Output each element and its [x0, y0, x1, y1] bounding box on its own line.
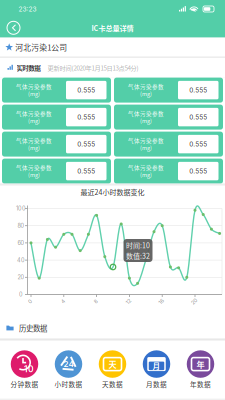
staticText: (mg) [28, 144, 40, 152]
button[interactable]: 月 [134, 347, 178, 392]
staticText: 分钟数据 [10, 379, 38, 389]
staticText: (mg) [140, 171, 152, 179]
button[interactable]: 天 [90, 347, 134, 392]
staticText: 气体污染参数 [16, 164, 52, 172]
staticText: 0 [19, 291, 23, 298]
staticText: 0.555 [77, 167, 95, 175]
staticText: 60 [17, 239, 24, 246]
staticText: 0.555 [189, 140, 207, 148]
staticText: 历史数据 [19, 323, 47, 333]
staticText: 20 [17, 274, 24, 281]
staticText: 24 [63, 359, 73, 369]
staticText: 0.555 [77, 140, 95, 148]
staticText: 8 [94, 298, 97, 305]
staticText: 气体污染参数 [128, 83, 164, 91]
staticText: 月 [152, 360, 160, 371]
staticText: 天 [108, 358, 116, 370]
staticText: (mg) [140, 117, 152, 125]
staticText: 80 [17, 222, 24, 229]
staticText: 40 [17, 257, 25, 263]
staticText: 23:23 [18, 5, 36, 13]
staticText: 0 [28, 298, 31, 305]
button[interactable]: 24 [46, 347, 90, 392]
staticText: 数值:32 [126, 251, 150, 261]
staticText: 年数据 [190, 379, 211, 389]
button[interactable]: 10 [2, 347, 46, 392]
staticText: (mg) [28, 117, 40, 125]
staticText: IC卡总量详情 [91, 23, 133, 33]
button[interactable]: Back [0, 18, 27, 38]
staticText: 20 [191, 298, 197, 305]
staticText: 0.555 [77, 113, 95, 121]
staticText: (mg) [140, 90, 152, 98]
staticText: 年 [196, 358, 204, 370]
staticText: (mg) [140, 144, 152, 152]
staticText: 0.555 [189, 86, 207, 94]
staticText: (mg) [28, 90, 40, 98]
button[interactable]: 年 [178, 347, 222, 392]
staticText: 实时数据 [16, 63, 40, 72]
staticText: 10 [24, 364, 34, 374]
staticText: 气体污染参数 [128, 110, 164, 118]
staticText: 4 [61, 298, 64, 305]
staticText: 河北污染1公司 [15, 41, 67, 53]
staticText: 0.555 [77, 86, 95, 94]
staticText: 16 [159, 298, 164, 305]
staticText: 100 [16, 205, 26, 212]
staticText: 12 [126, 298, 131, 305]
staticText: 0.555 [189, 167, 207, 175]
staticText: 天数据 [102, 379, 123, 389]
staticText: 气体污染参数 [16, 83, 52, 91]
staticText: (mg) [28, 171, 40, 179]
staticText: 月数据 [146, 379, 167, 389]
staticText: 时间:10 [126, 240, 150, 250]
staticText: 气体污染参数 [128, 164, 164, 172]
staticText: 0.555 [189, 113, 207, 121]
staticText: 最近24小时数据变化 [80, 187, 144, 197]
staticText: 小时数据 [54, 379, 82, 389]
staticText: 气体污染参数 [128, 137, 164, 145]
staticText: 更新时间(2020年1月15日13点54分) [47, 63, 138, 72]
staticText: 气体污染参数 [16, 110, 52, 118]
staticText: 气体污染参数 [16, 137, 52, 145]
